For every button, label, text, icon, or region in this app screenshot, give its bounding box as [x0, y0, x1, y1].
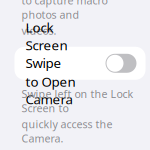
staticText: quickly access the Camera.: [21, 117, 112, 145]
staticText: Lock Screen Swipe: [25, 18, 67, 72]
button[interactable]: Lock Screen Swipe: [14, 47, 145, 80]
staticText: videos.: [21, 24, 56, 38]
staticText: to capture macro photos and: [21, 0, 107, 22]
staticText: to Open Camera: [25, 73, 75, 108]
staticText: Swipe left on the Lock Screen to: [21, 87, 133, 115]
